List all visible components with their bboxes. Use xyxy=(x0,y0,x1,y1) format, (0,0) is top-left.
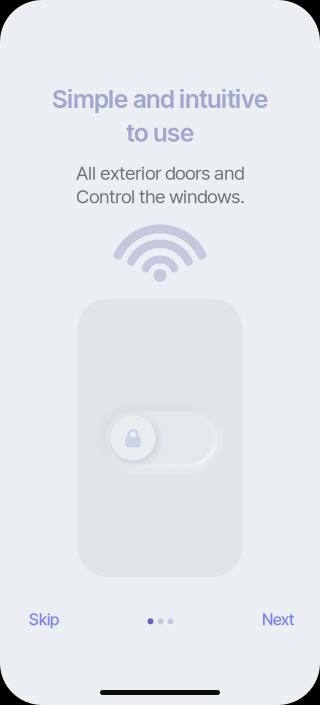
staticText: All exterior doors and Control the windo… xyxy=(76,162,244,208)
staticText: Next xyxy=(262,610,294,629)
staticText: Simple and intuitive to use xyxy=(52,84,268,148)
button[interactable]: Skip xyxy=(21,602,67,637)
staticText: Skip xyxy=(29,610,59,629)
button[interactable]: Next xyxy=(254,602,302,637)
